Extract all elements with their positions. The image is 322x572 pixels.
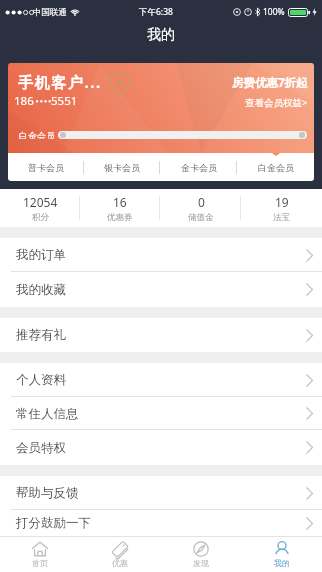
staticText: 个人资料 bbox=[16, 372, 66, 388]
staticText: 12054 bbox=[23, 194, 58, 210]
button[interactable]: 推荐有礼 bbox=[0, 318, 322, 352]
staticText: 我的 bbox=[274, 558, 290, 568]
staticText: 中国联通 bbox=[33, 7, 67, 18]
staticText: 下午6:38 bbox=[139, 6, 173, 18]
button[interactable]: Home bbox=[0, 536, 80, 572]
staticText: 发现 bbox=[193, 558, 209, 568]
button[interactable]: 白金会员 bbox=[237, 153, 314, 181]
staticText: 法宝 bbox=[273, 212, 290, 223]
staticText: 5551 bbox=[51, 93, 78, 109]
staticText: 16 bbox=[113, 194, 127, 210]
button[interactable]: 0 bbox=[160, 189, 241, 227]
button[interactable]: 金卡会员 bbox=[160, 153, 237, 181]
staticText: 100% bbox=[263, 6, 285, 18]
staticText: 查看会员权益> bbox=[245, 96, 308, 109]
button[interactable]: 会员特权 bbox=[0, 430, 322, 465]
staticText: 免 bbox=[115, 76, 125, 89]
staticText: 0 bbox=[198, 194, 205, 210]
staticText: 房费优惠7折起 bbox=[232, 75, 308, 91]
staticText: 常住人信息 bbox=[16, 406, 79, 422]
staticText: 我的订单 bbox=[16, 247, 66, 263]
staticText: 优惠券 bbox=[107, 212, 133, 223]
button[interactable]: 个人资料 bbox=[0, 363, 322, 397]
button[interactable]: 我的订单 bbox=[0, 238, 322, 272]
staticText: 储值金 bbox=[188, 212, 214, 223]
staticText: 我的收藏 bbox=[16, 282, 66, 298]
button[interactable]: 常住人信息 bbox=[0, 397, 322, 430]
staticText: 帮助与反馈 bbox=[16, 485, 79, 501]
button[interactable]: 16 bbox=[80, 189, 160, 227]
button[interactable]: Discover bbox=[160, 536, 241, 572]
staticText: 打分鼓励一下 bbox=[16, 515, 91, 531]
button[interactable]: 银卡会员 bbox=[84, 153, 160, 181]
staticText: 白金会员 bbox=[258, 162, 294, 173]
button[interactable]: Deals bbox=[80, 536, 160, 572]
staticText: 积分 bbox=[32, 212, 49, 223]
staticText: 银卡会员 bbox=[104, 162, 140, 173]
staticText: 推荐有礼 bbox=[16, 327, 66, 343]
staticText: 普卡会员 bbox=[28, 162, 64, 173]
staticText: 白金会员 bbox=[19, 130, 55, 139]
button[interactable]: 12054 bbox=[0, 189, 80, 227]
staticText: 优惠 bbox=[112, 558, 128, 568]
button[interactable]: Profile bbox=[241, 536, 322, 572]
button[interactable]: 19 bbox=[241, 189, 322, 227]
staticText: 我的 bbox=[147, 26, 175, 44]
staticText: 186 bbox=[14, 93, 34, 109]
button[interactable]: 帮助与反馈 bbox=[0, 476, 322, 510]
staticText: 金卡会员 bbox=[181, 162, 217, 173]
button[interactable]: 我的收藏 bbox=[0, 272, 322, 307]
button[interactable]: 普卡会员 bbox=[8, 153, 84, 181]
staticText: 会员特权 bbox=[16, 440, 66, 456]
staticText: 19 bbox=[275, 194, 289, 210]
button[interactable]: 打分鼓励一下 bbox=[0, 510, 322, 536]
staticText: 首页 bbox=[32, 558, 48, 568]
staticText: 手机客户... bbox=[18, 72, 102, 92]
